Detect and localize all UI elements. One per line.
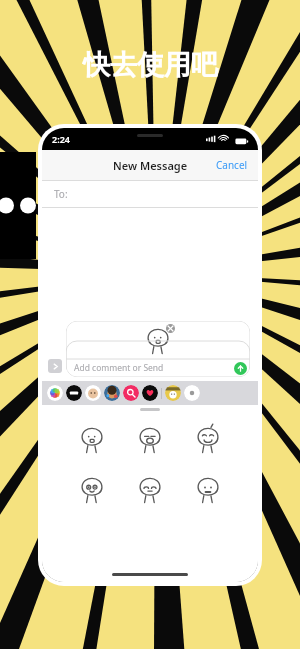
- staticText: Add comment or Send: [74, 362, 164, 374]
- button[interactable]: Send: [234, 362, 247, 375]
- button[interactable]: Sticker 6: [190, 471, 226, 507]
- button[interactable]: Sticker 2: [132, 421, 168, 457]
- staticText: 快去使用吧: [83, 48, 218, 82]
- button[interactable]: Sticker 4: [74, 471, 110, 507]
- button[interactable]: Sticker 3: [190, 421, 226, 457]
- staticText: To:: [54, 187, 68, 201]
- button[interactable]: Cancel: [206, 152, 258, 178]
- button[interactable]: Remove sticker: [166, 324, 175, 333]
- staticText: Cancel: [216, 158, 248, 172]
- button[interactable]: Sticker 5: [132, 471, 168, 507]
- button[interactable]: To:: [42, 181, 258, 207]
- button[interactable]: App 0: [47, 385, 63, 401]
- button[interactable]: Sticker 1: [74, 421, 110, 457]
- staticText: New Message: [113, 158, 188, 173]
- button[interactable]: App 4: [123, 385, 139, 401]
- button[interactable]: App 3: [104, 385, 120, 401]
- button[interactable]: Expand apps: [48, 359, 62, 373]
- staticText: 2:24: [52, 133, 70, 145]
- button[interactable]: App 2: [85, 385, 101, 401]
- button[interactable]: Add comment or Send: [66, 359, 250, 377]
- button[interactable]: App 6: [165, 385, 181, 401]
- button[interactable]: App 5: [142, 385, 158, 401]
- button[interactable]: App 1: [66, 385, 82, 401]
- button[interactable]: App 7: [184, 385, 200, 401]
